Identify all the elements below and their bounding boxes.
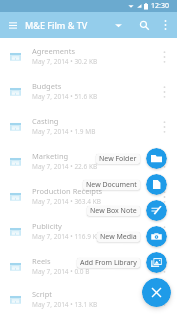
button[interactable]: Casting [0,109,177,144]
button[interactable]: New Document [146,174,167,195]
button[interactable]: Reels [0,249,177,284]
staticText: Agreements [32,46,75,56]
staticText: Publicity [32,221,62,231]
staticText: Add From Library [80,258,137,268]
staticText: New Document [86,180,137,190]
button[interactable]: Item options [153,289,175,311]
button[interactable]: Production Receipts [0,179,177,214]
button[interactable]: New Media [97,232,140,242]
staticText: Marketing [32,151,69,161]
button[interactable]: Add From Library [77,258,140,268]
staticText: Casting [32,116,59,126]
button[interactable]: Close [142,278,171,307]
button[interactable]: New Media [146,226,167,247]
button[interactable]: New Folder [146,148,167,169]
button[interactable]: New Box Note [146,200,167,221]
button[interactable]: Item options [153,186,175,208]
staticText: May 7, 2014 • 30.2 KB [32,57,98,66]
button[interactable]: Item options [153,116,175,138]
button[interactable]: New Folder [96,154,140,164]
staticText: M&E Film & TV [25,19,88,31]
button[interactable]: Item options [153,151,175,173]
staticText: May 7, 2014 • 116.9 KB [32,232,101,241]
button[interactable]: Item options [153,81,175,103]
button[interactable]: New Document [83,180,140,190]
button[interactable]: Budgets [0,74,177,109]
staticText: 12:30 [151,1,169,11]
button[interactable]: Publicity [0,214,177,249]
button[interactable]: Marketing [0,144,177,179]
staticText: Budgets [32,81,62,91]
button[interactable]: Item options [153,46,175,68]
button[interactable]: New Box Note [87,206,140,216]
staticText: May 7, 2014 • 13.1 KB [32,300,98,309]
staticText: Reels [32,256,51,266]
button[interactable]: Item options [153,256,175,278]
staticText: New Box Note [90,206,137,216]
button[interactable]: Script [0,284,177,315]
staticText: May 7, 2014 • 363.4 KB [32,197,101,206]
staticText: Production Receipts [32,186,103,196]
staticText: New Media [100,232,137,242]
button[interactable]: Agreements [0,39,177,74]
staticText: May 7, 2014 • 22.6 KB [32,162,98,171]
button[interactable]: Item options [153,221,175,243]
button[interactable]: Add From Library [146,252,167,273]
button[interactable]: More options [156,13,174,37]
button[interactable]: Search [132,13,156,37]
staticText: Script [32,289,53,299]
staticText: New Folder [99,154,137,164]
staticText: May 7, 2014 • 51.6 KB [32,92,98,101]
staticText: May 7, 2014 • 0.0 B [32,267,90,276]
staticText: May 7, 2014 • 1.9 MB [32,127,96,136]
button[interactable]: Menu [0,12,25,38]
